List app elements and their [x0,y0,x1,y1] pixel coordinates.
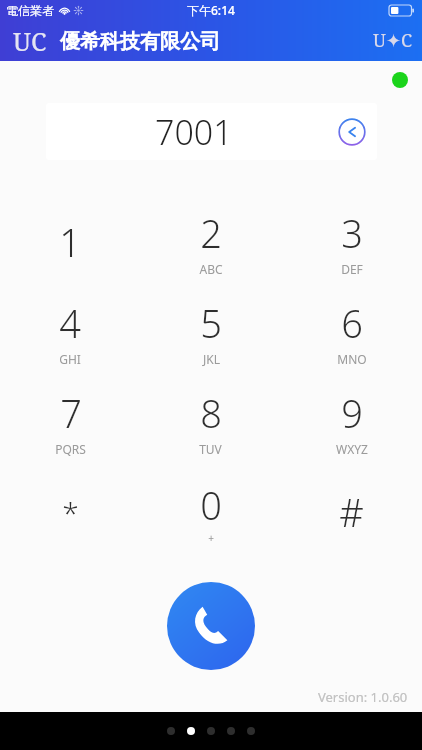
button[interactable]: Key 4 [0,287,140,377]
button[interactable]: Page 1 [167,727,175,735]
staticText: DEF [341,261,363,277]
button[interactable]: Key 0 [140,467,281,557]
button[interactable]: Key * [0,467,140,557]
staticText: 下午6:14 [187,2,235,18]
button[interactable]: Key # [281,467,422,557]
button[interactable]: Page 3 [207,727,215,735]
staticText: 9 [341,387,363,439]
staticText: ABC [199,261,223,277]
button[interactable]: Key 1 [0,197,140,287]
staticText: U✦C [373,28,413,53]
staticText: 優希科技有限公司 [60,29,220,54]
button[interactable]: Call [167,582,255,670]
button[interactable]: Key 2 [140,197,281,287]
button[interactable]: Key 8 [140,377,281,467]
staticText: WXYZ [336,441,368,457]
staticText: + [208,531,214,545]
button[interactable]: 7001 [46,103,377,160]
staticText: * [62,492,79,533]
button[interactable]: Backspace [336,116,368,148]
staticText: 0 [200,479,222,531]
button[interactable]: Page 5 [247,727,255,735]
button[interactable]: Page 2 [187,727,195,735]
staticText: UC [13,24,47,58]
button[interactable]: Key 7 [0,377,140,467]
staticText: # [339,486,364,538]
staticText: 2 [200,207,222,259]
staticText: 6 [341,297,363,349]
button[interactable]: Key 5 [140,287,281,377]
staticText: 1 [59,216,81,268]
staticText: Version: 1.0.60 [318,688,408,706]
staticText: 3 [341,207,363,259]
button[interactable]: Key 9 [281,377,422,467]
staticText: MNO [337,351,367,367]
staticText: 電信業者 [6,3,54,18]
staticText: 7 [60,387,82,439]
staticText: 5 [200,297,222,349]
staticText: GHI [59,351,81,367]
button[interactable]: Page 4 [227,727,235,735]
staticText: TUV [199,441,222,457]
button[interactable]: Key 3 [281,197,422,287]
staticText: 7001 [155,109,233,155]
staticText: PQRS [55,441,86,457]
staticText: 8 [200,387,222,439]
staticText: 4 [59,297,81,349]
button[interactable]: Key 6 [281,287,422,377]
other: Logo [373,28,413,53]
staticText: JKL [203,351,220,367]
